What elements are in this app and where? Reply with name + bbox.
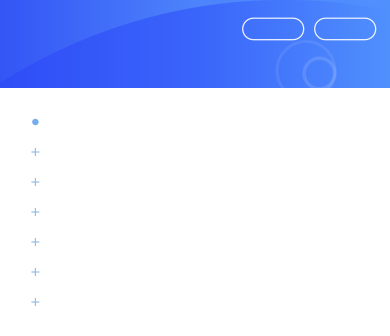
- button[interactable]: Log in: [243, 18, 304, 40]
- button[interactable]: Current item: [0, 107, 390, 137]
- button[interactable]: Add item: [0, 137, 390, 167]
- button[interactable]: Add item: [0, 257, 390, 287]
- button[interactable]: Add item: [0, 197, 390, 227]
- button[interactable]: Add item: [0, 227, 390, 257]
- button[interactable]: Add item: [0, 167, 390, 197]
- button[interactable]: Sign up: [315, 18, 376, 40]
- button[interactable]: Add item: [0, 287, 390, 317]
